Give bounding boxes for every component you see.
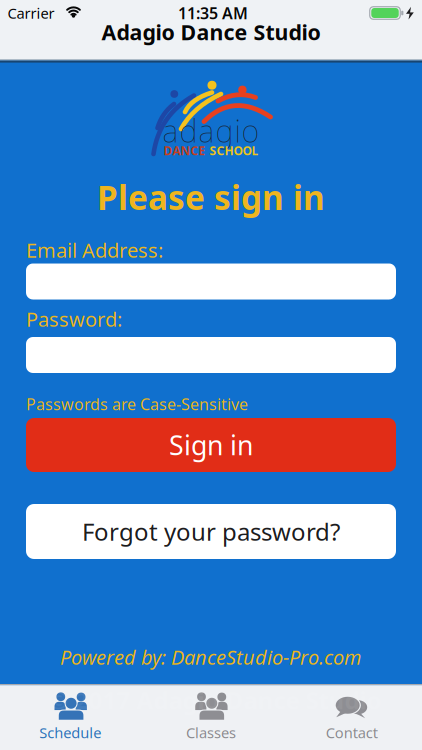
button[interactable]: Email Address (26, 263, 396, 299)
staticText: Carrier (7, 3, 54, 23)
staticText: SCHOOL (209, 142, 258, 158)
staticText: Sign in (169, 427, 253, 463)
button[interactable]: Contact (292, 686, 412, 748)
staticText: Email Address: (26, 237, 163, 263)
staticText: Schedule (39, 723, 101, 742)
staticText: Powered by: DanceStudio-Pro.com (60, 644, 362, 670)
button[interactable]: Password (26, 337, 396, 373)
staticText: Forgot your password? (82, 516, 340, 547)
staticText: Passwords are Case-Sensitive (26, 393, 248, 415)
staticText: Password: (26, 306, 122, 332)
button[interactable]: Sign in (26, 418, 396, 472)
button[interactable]: Schedule (10, 686, 130, 748)
staticText: Please sign in (97, 175, 325, 219)
button[interactable]: Forgot your password? (26, 504, 396, 559)
staticText: © 2017 Adagio Dance Studio (48, 684, 381, 716)
staticText: Adagio Dance Studio (101, 18, 320, 46)
staticText: Classes (186, 723, 236, 742)
staticText: adagio (162, 110, 259, 151)
staticText: DANCE (163, 142, 205, 158)
button[interactable]: Classes (151, 686, 271, 748)
staticText: Contact (326, 723, 378, 742)
staticText: 11:35 AM (178, 2, 248, 24)
